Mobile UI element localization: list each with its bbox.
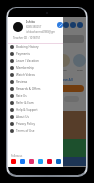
button[interactable]: Social link: [47, 159, 52, 164]
button[interactable]: Help & Support: [8, 106, 63, 113]
staticText: Refer & Earn: [16, 101, 34, 105]
staticText: Class: [13, 68, 19, 71]
button[interactable]: Category: [25, 54, 38, 67]
staticText: Booking History: [16, 45, 39, 49]
button[interactable]: Edit profile: [57, 22, 63, 28]
staticText: Help & Support: [16, 108, 38, 112]
button[interactable]: Payments: [8, 50, 63, 57]
button[interactable]: Category: [73, 54, 86, 67]
button[interactable]: Terms of Use: [8, 127, 63, 134]
staticText: Ishita: [26, 20, 35, 24]
staticText: School: [38, 45, 48, 49]
button[interactable]: Leave / Vacation: [8, 57, 63, 64]
button[interactable]: Rate Us: [8, 92, 63, 99]
staticText: Class: [61, 68, 67, 71]
staticText: Privacy Policy: [16, 122, 35, 126]
staticText: Teacher ID : 1018151: [13, 36, 41, 40]
button[interactable]: Social link: [29, 159, 34, 164]
button[interactable]: Rewards & Offers: [8, 85, 63, 92]
button[interactable]: Social link: [11, 159, 16, 164]
button[interactable]: Action: [56, 22, 62, 28]
button[interactable]: Refer & Earn: [8, 99, 63, 106]
staticText: Rate Us: [16, 94, 27, 98]
button[interactable]: College: [10, 85, 84, 92]
staticText: About Us: [16, 115, 29, 119]
button[interactable]: Social link: [56, 159, 61, 164]
button[interactable]: Action: [77, 22, 83, 28]
staticText: View All: [60, 77, 73, 82]
staticText: Class: [29, 68, 35, 71]
staticText: ishitasharma0980@gm: [26, 30, 56, 34]
button[interactable]: Reviews: [8, 78, 63, 85]
button[interactable]: Action: [63, 22, 69, 28]
button[interactable]: Membership: [8, 64, 63, 71]
button[interactable]: Booking History: [8, 43, 63, 50]
button[interactable]: [10, 96, 25, 102]
staticText: Leave / Vacation: [16, 59, 39, 63]
button[interactable]: Social link: [38, 159, 43, 164]
button[interactable]: Action: [70, 22, 76, 28]
button[interactable]: About Us: [8, 113, 63, 120]
button[interactable]: Category: [57, 54, 70, 67]
staticText: Rewards & Offers: [16, 87, 41, 91]
staticText: 8285380257: [26, 25, 42, 29]
button[interactable]: Privacy Policy: [8, 120, 63, 127]
staticText: Terms of Use: [16, 129, 35, 133]
staticText: Follow us: [11, 154, 23, 158]
staticText: Payments: [16, 52, 30, 56]
button[interactable]: Watch Videos: [8, 71, 63, 78]
button[interactable]: Profile photo: [13, 22, 23, 32]
staticText: Reviews: [16, 80, 28, 84]
staticText: Watch Videos: [16, 73, 35, 77]
staticText: Class: [77, 68, 83, 71]
button[interactable]: Social link: [20, 159, 25, 164]
staticText: Membership: [16, 66, 34, 70]
button[interactable]: Category: [9, 54, 22, 67]
